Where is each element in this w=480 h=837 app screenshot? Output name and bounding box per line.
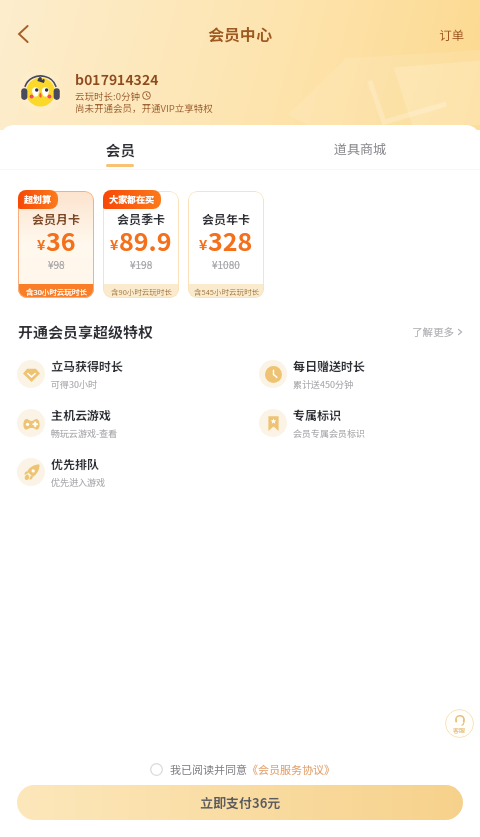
staticText: ¥ [199, 234, 208, 254]
staticText: 开通会员享超级特权 [18, 321, 154, 343]
staticText: 可得30小时 [51, 378, 97, 391]
staticText: 优先进入游戏 [51, 476, 106, 489]
staticText: ¥1080 [212, 257, 240, 271]
staticText: 累计送450分钟 [293, 378, 353, 391]
button[interactable]: 专属标识 [259, 406, 366, 440]
staticText: b017914324 [75, 69, 159, 89]
button[interactable]: 了解更多 [408, 320, 468, 343]
button[interactable]: 同意协议 [145, 758, 167, 780]
staticText: 含545小时云玩时长 [194, 286, 259, 297]
button[interactable]: 会员季卡 [103, 191, 179, 298]
staticText: 云玩时长:0分钟 [75, 89, 140, 103]
staticText: ¥ [110, 234, 119, 254]
staticText: 专属标识 [293, 406, 342, 423]
button[interactable]: 会员年卡 [188, 191, 264, 298]
staticText: 会员专属会员标识 [293, 427, 366, 440]
staticText: ¥98 [48, 257, 65, 271]
staticText: 道具商城 [334, 139, 387, 158]
staticText: 客服 [453, 726, 466, 735]
staticText: 尚未开通会员，开通VIP立享特权 [75, 101, 213, 115]
staticText: 大家都在买 [109, 193, 155, 206]
staticText: 了解更多 [412, 324, 454, 339]
staticText: 主机云游戏 [51, 406, 112, 423]
button[interactable]: 道具商城 [240, 125, 480, 170]
button[interactable]: Back [4, 14, 44, 54]
staticText: 我已阅读并同意 [170, 761, 247, 777]
button[interactable]: 会员月卡 [18, 191, 94, 298]
staticText: 订单 [439, 25, 465, 43]
staticText: 会员年卡 [202, 210, 251, 227]
staticText: 36 [46, 222, 76, 258]
button[interactable]: 立即支付36元 [17, 785, 463, 820]
staticText: 含90小时云玩时长 [111, 286, 172, 297]
staticText: 会员季卡 [117, 210, 166, 227]
staticText: 立即支付36元 [200, 793, 281, 812]
staticText: 会员月卡 [32, 210, 81, 227]
staticText: 超划算 [24, 193, 52, 206]
button[interactable]: 会员 [0, 125, 240, 170]
staticText: 89.9 [119, 222, 172, 258]
button[interactable]: 客服 [445, 709, 474, 738]
staticText: 会员中心 [208, 22, 273, 45]
staticText: 立马获得时长 [51, 357, 124, 374]
button[interactable]: 订单 [424, 15, 480, 53]
staticText: 含30小时云玩时长 [26, 286, 87, 297]
staticText: 会员 [106, 139, 135, 160]
button[interactable]: 每日赠送时长 [259, 357, 366, 391]
staticText: 优先排队 [51, 455, 100, 472]
staticText: 每日赠送时长 [293, 357, 366, 374]
button[interactable]: 《会员服务协议》 [247, 761, 335, 777]
button[interactable]: 优先排队 [17, 455, 106, 489]
staticText: ¥ [37, 234, 46, 254]
staticText: 328 [208, 222, 253, 258]
button[interactable]: 主机云游戏 [17, 406, 118, 440]
staticText: 畅玩云游戏-查看 [51, 427, 118, 440]
button[interactable]: 立马获得时长 [17, 357, 124, 391]
staticText: ¥198 [130, 257, 153, 271]
